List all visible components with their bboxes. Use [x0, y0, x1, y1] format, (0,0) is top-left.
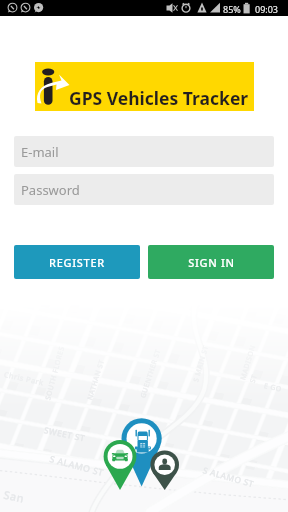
- button[interactable]: SIGN IN: [148, 245, 274, 279]
- staticText: 85%: [223, 3, 241, 15]
- button[interactable]: Password: [14, 174, 274, 205]
- staticText: E-mail: [21, 143, 59, 161]
- staticText: 09:03: [255, 3, 279, 15]
- staticText: GPS Vehicles Tracker: [69, 86, 249, 110]
- staticText: SIGN IN: [188, 255, 235, 270]
- staticText: Password: [21, 181, 80, 199]
- button[interactable]: REGISTER: [14, 245, 140, 279]
- button[interactable]: E-mail: [14, 136, 274, 167]
- staticText: REGISTER: [49, 255, 105, 270]
- button[interactable]: GPS Vehicles Tracker: [35, 62, 254, 111]
